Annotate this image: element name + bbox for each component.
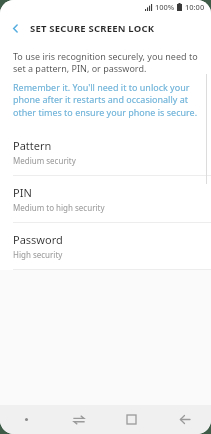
button[interactable]: Pattern (0, 129, 211, 175)
staticText: 10:00 (185, 2, 205, 12)
button[interactable]: PIN (0, 176, 211, 222)
staticText: 100% (155, 2, 175, 12)
staticText: Remember it. You'll need it to unlock yo… (13, 81, 198, 119)
staticText: Pattern (13, 138, 52, 153)
staticText: SET SECURE SCREEN LOCK (30, 22, 155, 35)
staticText: PIN (13, 185, 32, 200)
button[interactable]: Menu indicator (0, 405, 52, 434)
button[interactable]: Back (158, 405, 211, 434)
staticText: Medium security (13, 155, 76, 166)
button[interactable]: Back (0, 14, 30, 42)
staticText: Password (13, 232, 63, 247)
staticText: High security (13, 249, 63, 260)
button[interactable]: Recent apps (52, 405, 105, 434)
staticText: Medium to high security (13, 202, 105, 213)
button[interactable]: Home (105, 405, 158, 434)
button[interactable]: Password (0, 223, 211, 269)
staticText: To use iris recognition securely, you ne… (13, 50, 198, 75)
